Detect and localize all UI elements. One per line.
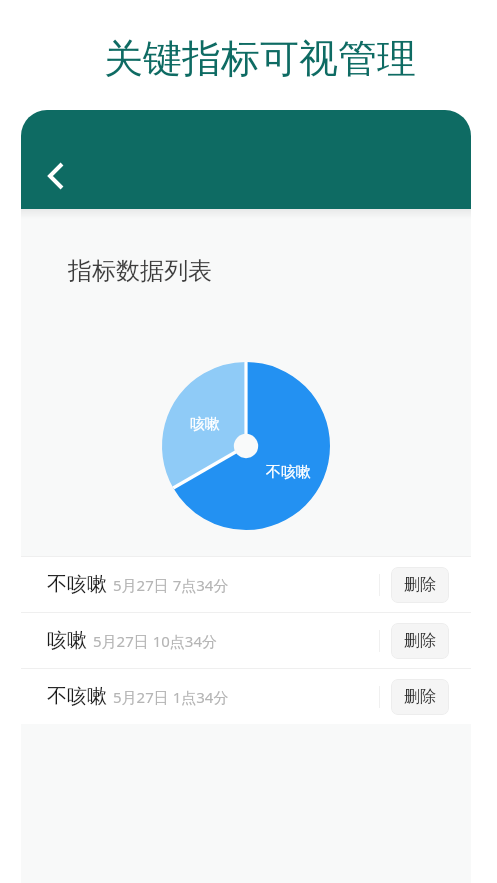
staticText: 不咳嗽 xyxy=(47,684,107,709)
button[interactable]: 删除 xyxy=(391,623,449,659)
staticText: 删除 xyxy=(404,687,436,707)
button[interactable]: 咳嗽 xyxy=(21,613,471,668)
staticText: 5月27日 10点34分 xyxy=(93,631,217,651)
staticText: 删除 xyxy=(404,575,436,595)
staticText: 不咳嗽 xyxy=(266,463,311,482)
button[interactable]: 不咳嗽 xyxy=(21,669,471,724)
staticText: 关键指标可视管理 xyxy=(104,34,416,83)
staticText: 咳嗽 xyxy=(190,415,220,434)
staticText: 5月27日 1点34分 xyxy=(113,687,229,707)
button[interactable]: 删除 xyxy=(391,679,449,715)
button[interactable]: 删除 xyxy=(391,567,449,603)
staticText: 5月27日 7点34分 xyxy=(113,575,229,595)
staticText: 删除 xyxy=(404,631,436,651)
staticText: 咳嗽 xyxy=(47,628,87,653)
button[interactable]: Back xyxy=(26,132,78,184)
staticText: 指标数据列表 xyxy=(68,256,212,286)
button[interactable]: 不咳嗽 xyxy=(21,557,471,612)
staticText: 不咳嗽 xyxy=(47,572,107,597)
